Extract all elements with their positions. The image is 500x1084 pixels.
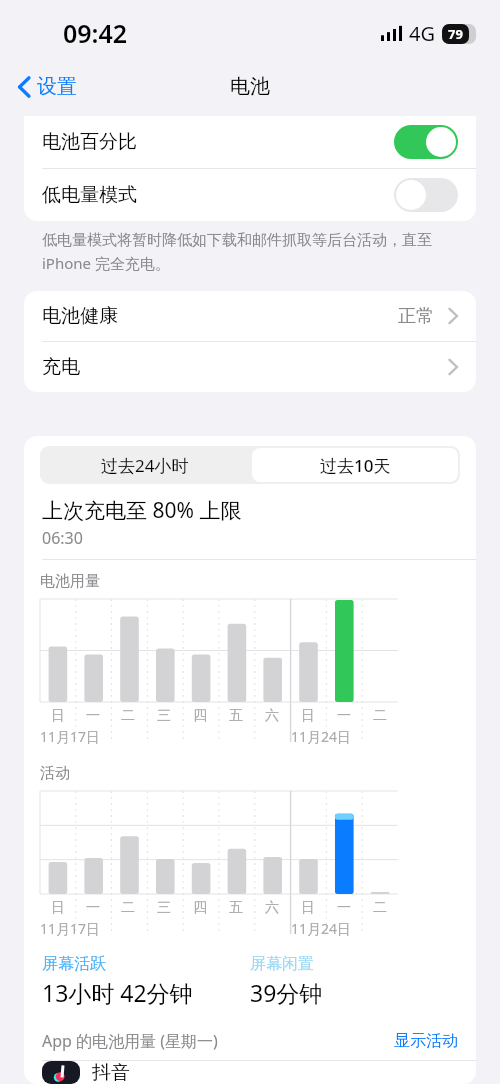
staticText: 过去10天 <box>320 454 391 477</box>
staticText: 11月24日 <box>291 727 352 746</box>
staticText: 一 <box>86 707 100 725</box>
staticText: 四 <box>193 707 207 725</box>
staticText: 低电量模式将暂时降低如下载和邮件抓取等后台活动，直至 <box>42 231 432 250</box>
staticText: 活动 <box>40 764 70 783</box>
staticText: 过去24小时 <box>101 454 189 477</box>
staticText: 13小时 42分钟 <box>42 977 193 1008</box>
button[interactable]: 低电量模式 <box>24 169 476 221</box>
staticText: 四 <box>193 899 207 917</box>
staticText: 一 <box>86 899 100 917</box>
staticText: 日 <box>51 899 65 917</box>
staticText: 三 <box>157 707 171 725</box>
staticText: 抖音 <box>92 1061 130 1084</box>
staticText: 二 <box>373 707 387 725</box>
button[interactable]: Toggle off <box>394 178 458 212</box>
staticText: 设置 <box>37 74 77 99</box>
staticText: 六 <box>265 899 279 917</box>
staticText: 电池健康 <box>42 304 398 328</box>
staticText: 屏幕闲置 <box>250 954 314 974</box>
staticText: 低电量模式 <box>42 183 394 207</box>
button[interactable]: 充电 <box>24 342 476 392</box>
button[interactable]: 过去10天 <box>252 448 458 482</box>
staticText: App 的电池用量 (星期一) <box>42 1030 394 1052</box>
staticText: 五 <box>229 707 243 725</box>
staticText: 日 <box>51 707 65 725</box>
staticText: 39分钟 <box>250 977 323 1008</box>
button[interactable]: 电池百分比 <box>24 116 476 168</box>
button[interactable]: 显示活动 <box>394 1031 458 1051</box>
staticText: 上次充电至 80% 上限 <box>42 496 242 525</box>
staticText: 日 <box>301 707 315 725</box>
staticText: 屏幕活跃 <box>42 954 106 974</box>
staticText: 一 <box>337 899 351 917</box>
staticText: 电池 <box>230 74 270 99</box>
button[interactable]: 抖音 <box>24 1061 476 1084</box>
staticText: 06:30 <box>42 527 83 549</box>
staticText: 电池用量 <box>40 572 100 591</box>
staticText: 11月17日 <box>40 727 101 746</box>
staticText: 电池百分比 <box>42 130 394 154</box>
staticText: 显示活动 <box>394 1031 458 1051</box>
button[interactable]: 电池健康 <box>24 291 476 341</box>
staticText: 一 <box>337 707 351 725</box>
button[interactable]: 设置 <box>12 70 83 103</box>
staticText: 五 <box>229 899 243 917</box>
staticText: 充电 <box>42 355 448 379</box>
staticText: 二 <box>373 899 387 917</box>
staticText: 日 <box>301 899 315 917</box>
staticText: 09:42 <box>63 16 128 50</box>
staticText: 11月24日 <box>291 919 352 938</box>
staticText: iPhone 完全充电。 <box>42 253 170 273</box>
staticText: 二 <box>121 899 135 917</box>
button[interactable]: Toggle on <box>394 125 458 159</box>
button[interactable]: 过去24小时 <box>40 446 250 484</box>
staticText: 二 <box>121 707 135 725</box>
staticText: 79 <box>448 25 463 43</box>
staticText: 11月17日 <box>40 919 101 938</box>
staticText: 六 <box>265 707 279 725</box>
staticText: 4G <box>409 20 435 47</box>
staticText: 正常 <box>398 305 434 328</box>
staticText: 三 <box>157 899 171 917</box>
